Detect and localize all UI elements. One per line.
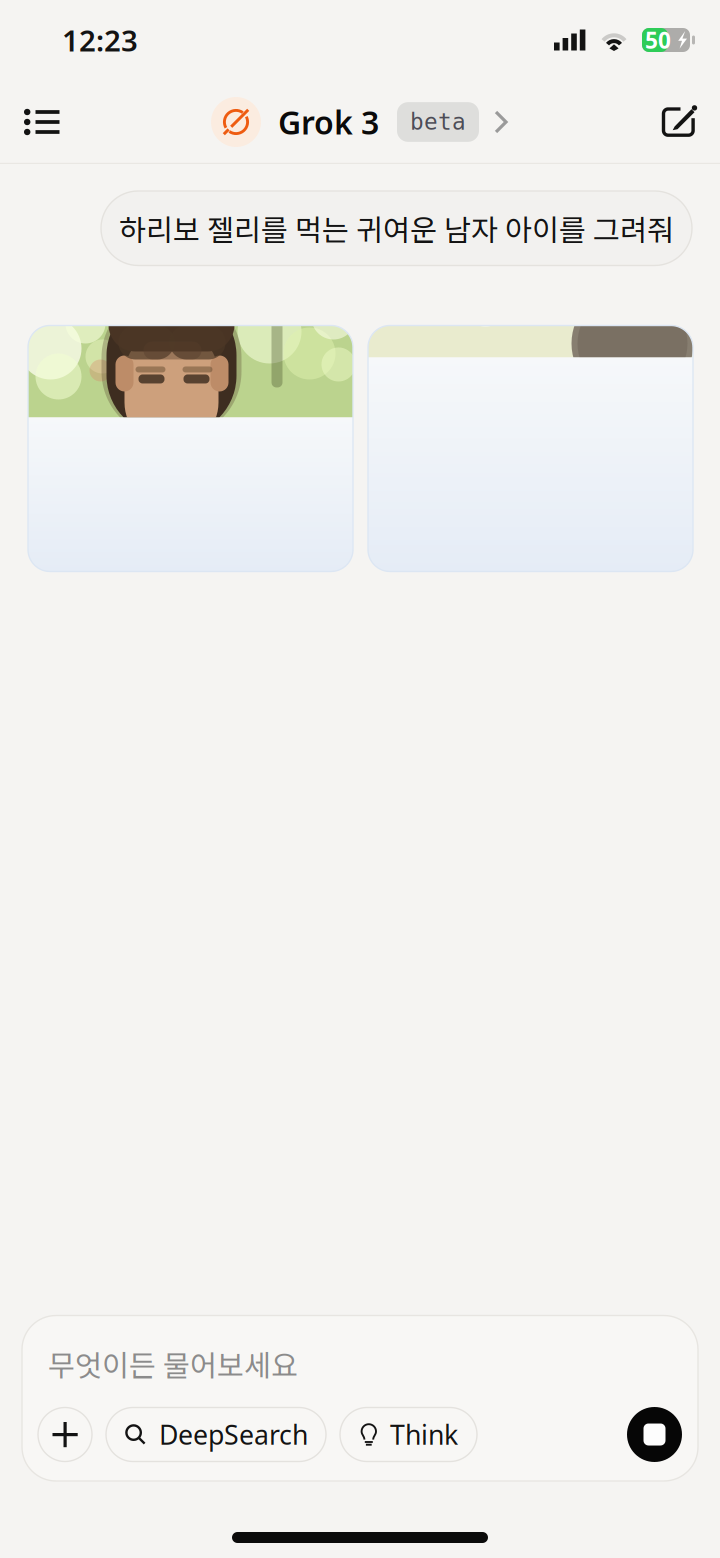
- button[interactable]: Conversations: [7, 87, 77, 157]
- button[interactable]: Stop: [627, 1407, 682, 1462]
- staticText: 50: [645, 25, 671, 55]
- staticText: DeepSearch: [159, 1417, 308, 1452]
- button[interactable]: Grok 3: [211, 97, 509, 147]
- button[interactable]: New chat: [645, 87, 715, 157]
- staticText: 12:23: [62, 20, 138, 59]
- button[interactable]: Attach: [38, 1407, 92, 1461]
- staticText: Grok 3: [278, 101, 379, 143]
- staticText: 하리보 젤리를 먹는 귀여운 남자 아이를 그려줘: [119, 207, 674, 249]
- button[interactable]: DeepSearch: [106, 1407, 326, 1461]
- staticText: 무엇이든 물어보세요: [48, 1342, 298, 1385]
- staticText: Think: [390, 1417, 458, 1452]
- staticText: beta: [410, 109, 466, 135]
- button[interactable]: Think: [340, 1407, 477, 1461]
